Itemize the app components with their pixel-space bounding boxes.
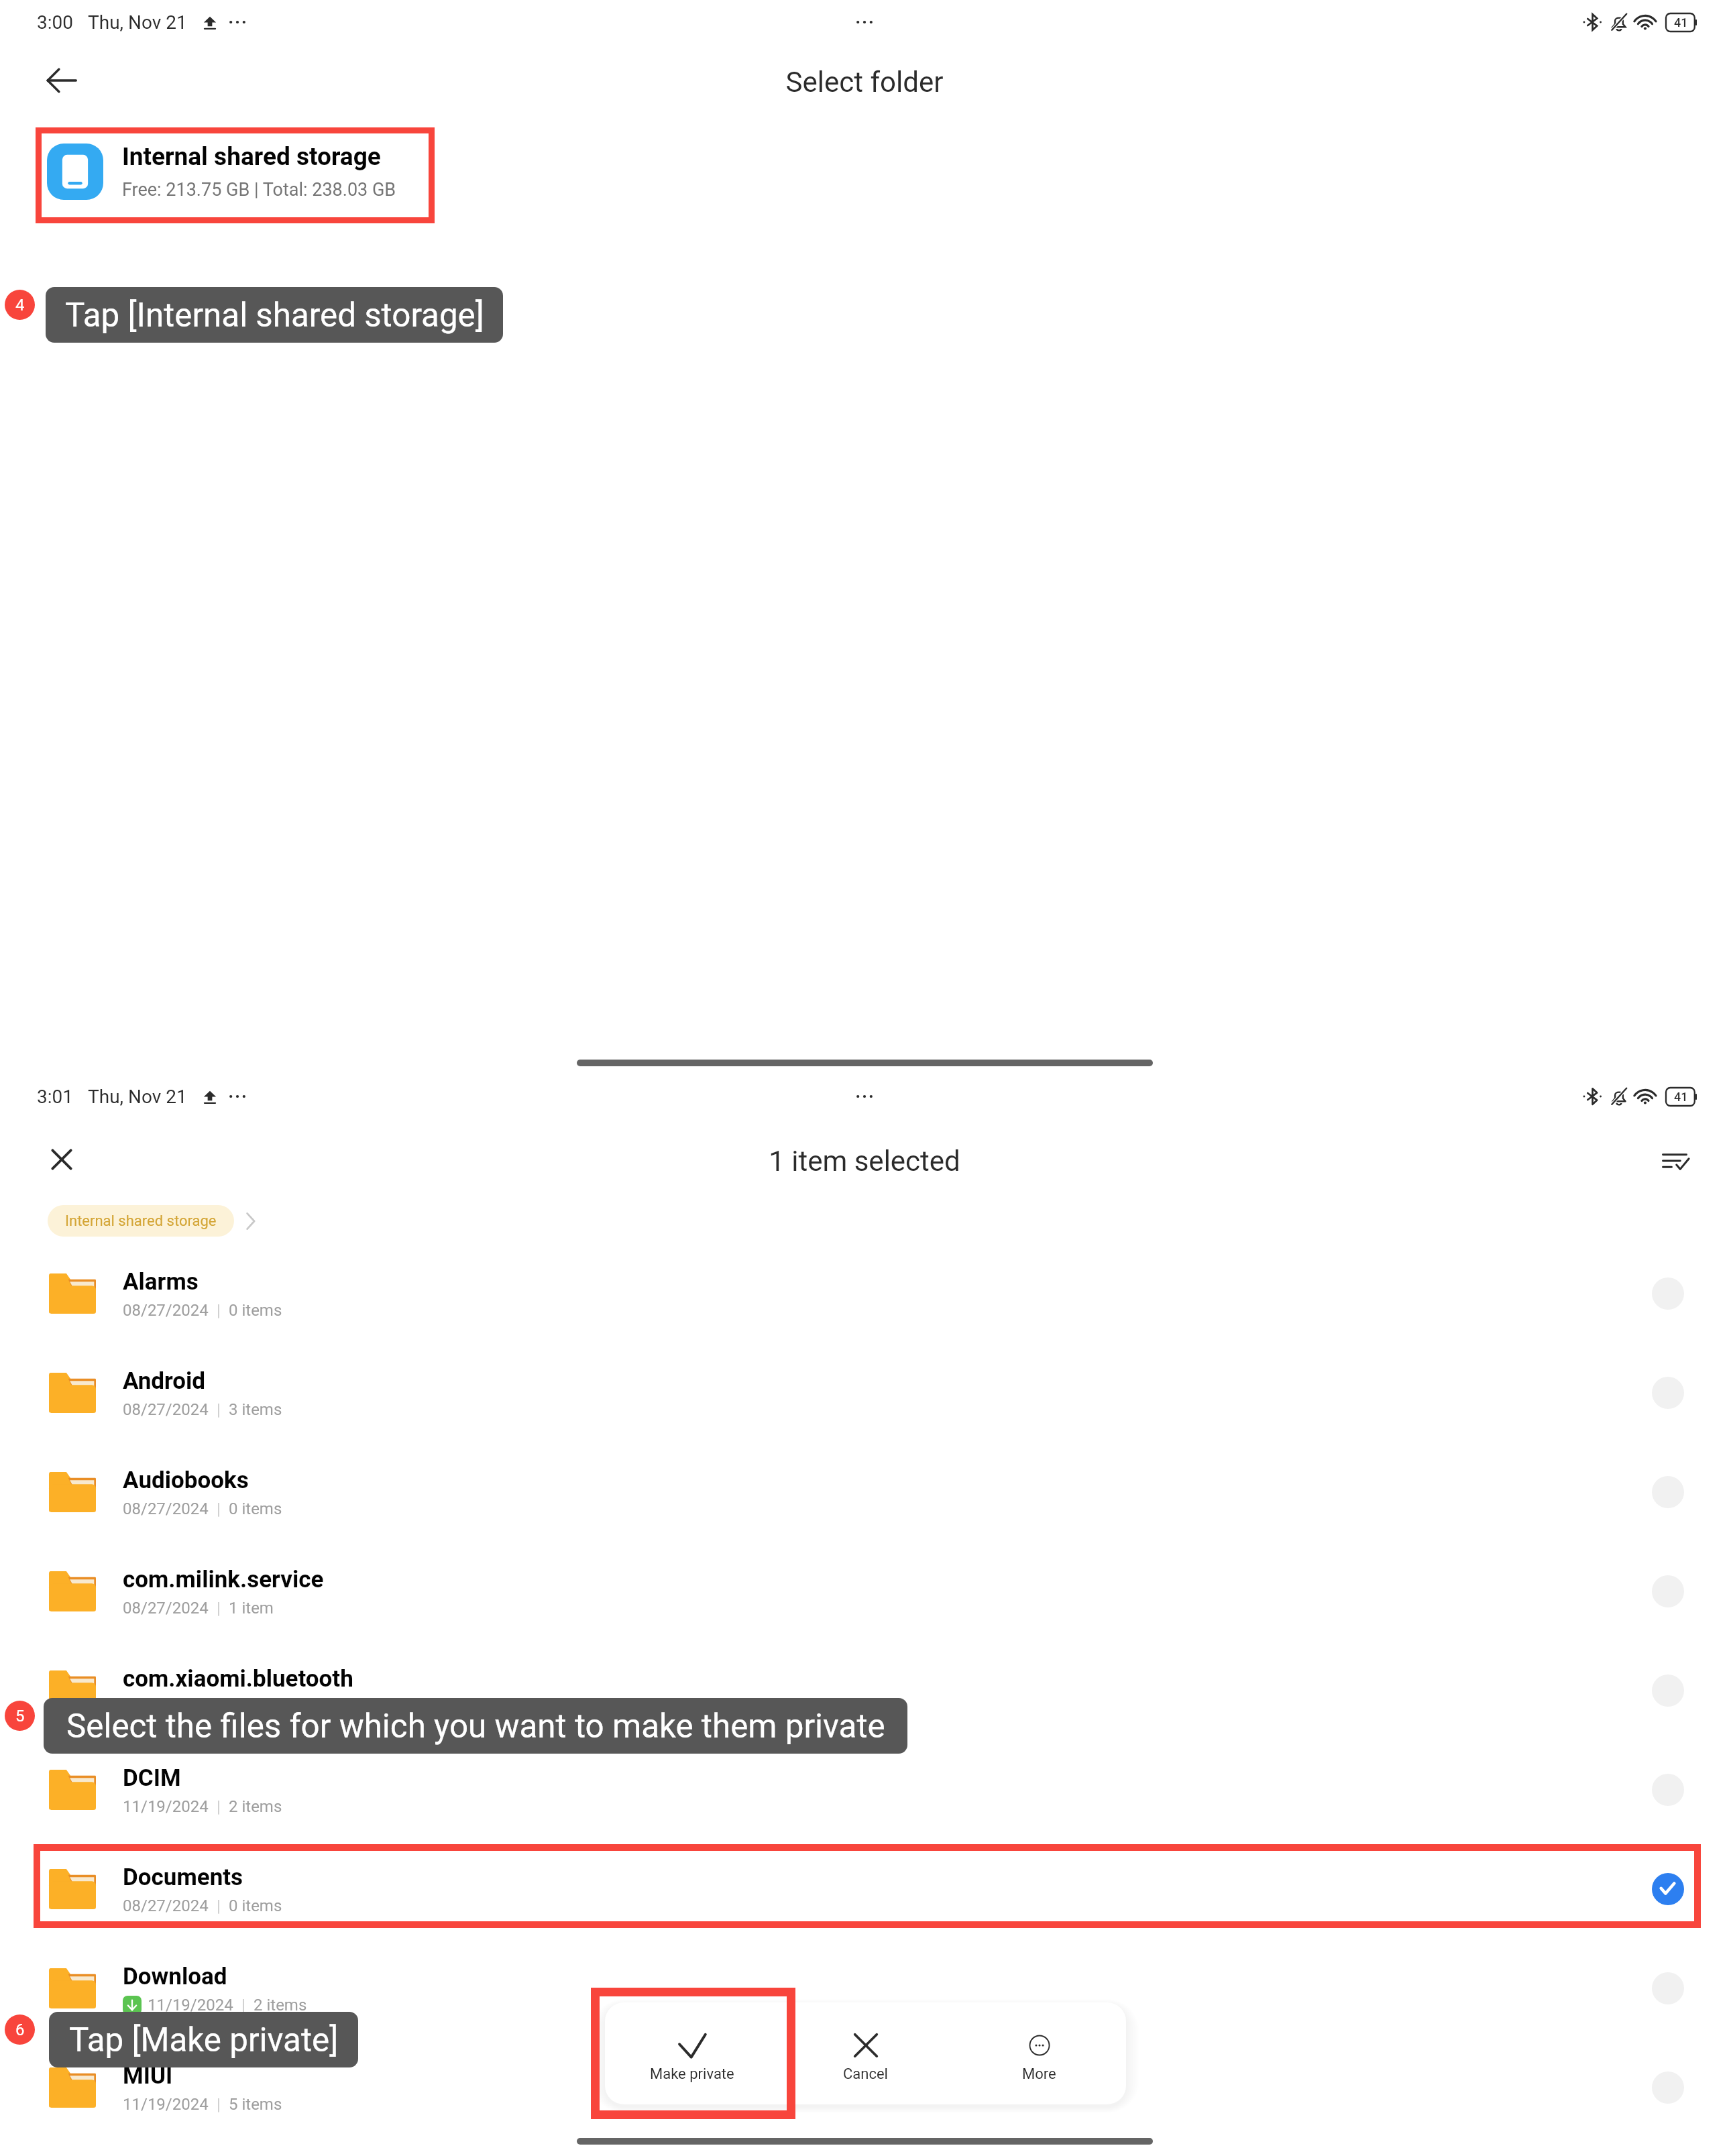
staticText: 2 items	[254, 1996, 307, 2015]
button[interactable]: Make private	[605, 2002, 779, 2104]
staticText: 08/27/2024	[123, 1301, 209, 1320]
staticText: |	[209, 2095, 229, 2114]
staticText: Internal shared storage	[122, 142, 381, 171]
staticText: 1 item	[229, 1599, 274, 1618]
button[interactable]: Select	[1652, 1278, 1684, 1310]
button[interactable]: Back	[40, 60, 82, 101]
button[interactable]: com.xiaomi.bluetooth	[0, 1650, 1729, 1731]
button[interactable]: Select	[1652, 1675, 1684, 1707]
staticText: 41	[1674, 15, 1688, 30]
button[interactable]: More	[952, 2002, 1126, 2104]
button[interactable]: Selected	[1652, 1873, 1684, 1905]
button[interactable]: Audiobooks	[0, 1452, 1729, 1532]
staticText: 5	[15, 1707, 25, 1725]
staticText: Documents	[123, 1864, 243, 1891]
staticText: |	[233, 1996, 254, 2015]
staticText: |	[209, 1599, 229, 1618]
button[interactable]: MIUI	[0, 2047, 1729, 2128]
button[interactable]: Select all	[1654, 1140, 1695, 1182]
staticText: com.milink.service	[123, 1566, 324, 1593]
staticText: MIUI	[123, 2062, 173, 2090]
staticText: Audiobooks	[123, 1467, 249, 1494]
staticText: 3:01	[37, 1086, 73, 1108]
staticText: Make private	[650, 2065, 734, 2083]
staticText: |	[209, 1797, 229, 1816]
staticText: 11/19/2024	[148, 1996, 233, 2015]
staticText: 08/27/2024	[123, 1400, 209, 1419]
staticText: Download	[123, 1963, 227, 1990]
staticText: Tap [Internal shared storage]	[65, 296, 484, 335]
staticText: Alarms	[123, 1268, 199, 1296]
staticText: |	[209, 1499, 229, 1518]
button[interactable]: Internal shared storage	[36, 123, 435, 219]
staticText: 08/27/2024	[123, 1896, 209, 1915]
staticText: Free: 213.75 GB | Total: 238.03 GB	[122, 179, 396, 201]
button[interactable]: Select	[1652, 1774, 1684, 1806]
staticText: More	[1022, 2065, 1056, 2083]
staticText: 1 item	[229, 1698, 274, 1717]
button[interactable]: Documents	[0, 1849, 1729, 1929]
staticText: 0 items	[229, 1896, 282, 1915]
button[interactable]: Select	[1652, 1476, 1684, 1508]
staticText: |	[209, 1698, 229, 1717]
button[interactable]: Internal shared storage	[48, 1205, 234, 1237]
staticText: |	[209, 1400, 229, 1419]
staticText: |	[209, 1301, 229, 1320]
staticText: 2 items	[229, 1797, 282, 1816]
button[interactable]: Select	[1652, 1972, 1684, 2004]
button[interactable]: Select	[1652, 1575, 1684, 1607]
button[interactable]: Android	[0, 1353, 1729, 1433]
button[interactable]: Download	[0, 1948, 1729, 2029]
staticText: Tap [Make private]	[69, 2021, 339, 2059]
staticText: 5 items	[229, 2095, 282, 2114]
staticText: 0 items	[229, 1301, 282, 1320]
staticText: Thu, Nov 21	[88, 1086, 187, 1108]
button[interactable]: Select	[1652, 1377, 1684, 1409]
staticText: Cancel	[843, 2065, 888, 2083]
button[interactable]: com.milink.service	[0, 1551, 1729, 1632]
staticText: 08/27/2024	[123, 1499, 209, 1518]
staticText: 1 item selected	[0, 1145, 1729, 1178]
staticText: Thu, Nov 21	[88, 11, 187, 34]
staticText: Android	[123, 1367, 206, 1395]
staticText: DCIM	[123, 1764, 181, 1792]
staticText: Select the files for which you want to m…	[66, 1707, 885, 1746]
staticText: 08/27/2024	[123, 1599, 209, 1618]
staticText: 6	[15, 2021, 25, 2039]
button[interactable]: Close	[41, 1139, 82, 1180]
staticText: |	[209, 1896, 229, 1915]
staticText: 3:00	[37, 11, 73, 34]
staticText: com.xiaomi.bluetooth	[123, 1665, 353, 1693]
staticText: Internal shared storage	[65, 1212, 217, 1230]
button[interactable]: DCIM	[0, 1750, 1729, 1830]
staticText: 0 items	[229, 1499, 282, 1518]
staticText: 08/27/2024	[123, 1698, 209, 1717]
button[interactable]: Alarms	[0, 1253, 1729, 1334]
staticText: 41	[1674, 1090, 1688, 1104]
button[interactable]: Select	[1652, 2072, 1684, 2104]
staticText: 3 items	[229, 1400, 282, 1419]
staticText: 11/19/2024	[123, 1797, 209, 1816]
staticText: Select folder	[0, 66, 1729, 99]
staticText: 4	[15, 296, 25, 315]
staticText: 11/19/2024	[123, 2095, 209, 2114]
button[interactable]: Cancel	[779, 2002, 952, 2104]
